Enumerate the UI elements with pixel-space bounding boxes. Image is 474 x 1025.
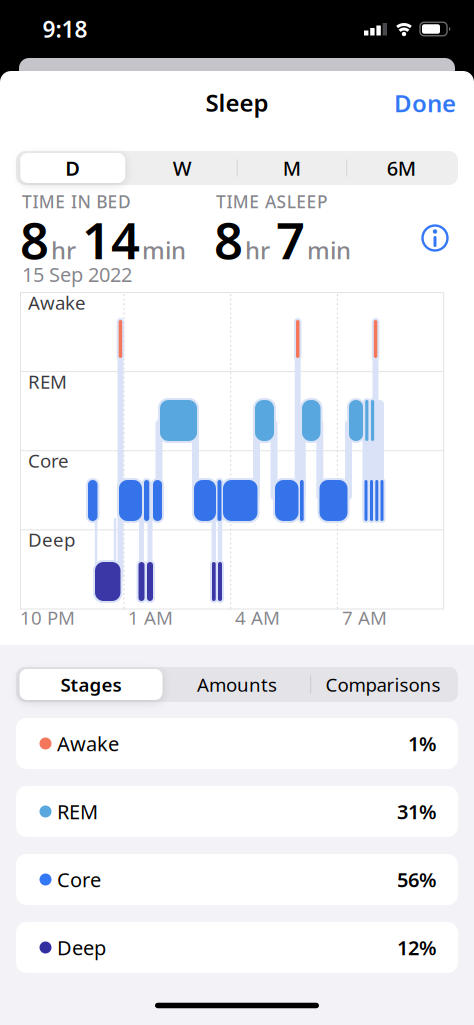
button[interactable]: D: [20, 153, 125, 183]
button[interactable]: Core: [16, 854, 458, 905]
button[interactable]: 6M: [349, 153, 454, 183]
staticText: D: [65, 155, 80, 181]
staticText: 10 PM: [20, 605, 75, 630]
staticText: W: [173, 155, 192, 181]
button[interactable]: Comparisons: [311, 669, 454, 700]
button[interactable]: W: [130, 153, 235, 183]
staticText: 4 AM: [235, 605, 280, 630]
staticText: min: [307, 234, 351, 266]
staticText: 8: [214, 206, 243, 273]
staticText: M: [283, 155, 301, 181]
staticText: 6M: [387, 155, 416, 181]
staticText: hr: [51, 234, 76, 266]
staticText: 7 AM: [342, 605, 387, 630]
staticText: 1 AM: [128, 605, 173, 630]
button[interactable]: Awake: [16, 718, 458, 769]
staticText: min: [142, 234, 186, 266]
staticText: 7: [276, 206, 305, 273]
staticText: Deep: [57, 934, 106, 961]
button[interactable]: About Sleep Stages: [419, 222, 450, 253]
staticText: Core: [57, 866, 101, 893]
staticText: 14: [82, 206, 140, 273]
staticText: 1%: [408, 730, 437, 757]
staticText: 9:18: [42, 14, 87, 44]
staticText: 15 Sep 2022: [22, 261, 132, 288]
staticText: Awake: [57, 730, 119, 757]
staticText: 8: [20, 206, 49, 273]
staticText: Stages: [60, 672, 121, 697]
staticText: REM: [57, 798, 98, 825]
button[interactable]: M: [239, 153, 344, 183]
staticText: REM: [28, 369, 67, 394]
staticText: 31%: [397, 798, 437, 825]
staticText: hr: [245, 234, 270, 266]
staticText: Sleep: [205, 87, 268, 118]
staticText: TIME ASLEEP: [216, 190, 328, 213]
staticText: Comparisons: [325, 672, 440, 697]
button[interactable]: Deep: [16, 922, 458, 973]
staticText: 56%: [397, 866, 437, 893]
staticText: 12%: [397, 934, 437, 961]
staticText: TIME IN BED: [22, 190, 131, 213]
button[interactable]: REM: [16, 786, 458, 837]
staticText: Done: [394, 87, 456, 119]
staticText: Core: [28, 448, 69, 473]
staticText: Deep: [28, 527, 75, 552]
button[interactable]: Stages: [19, 669, 162, 700]
staticText: Amounts: [197, 672, 277, 697]
button[interactable]: Amounts: [165, 669, 308, 700]
staticText: Awake: [28, 290, 86, 315]
button[interactable]: Done: [376, 86, 456, 120]
